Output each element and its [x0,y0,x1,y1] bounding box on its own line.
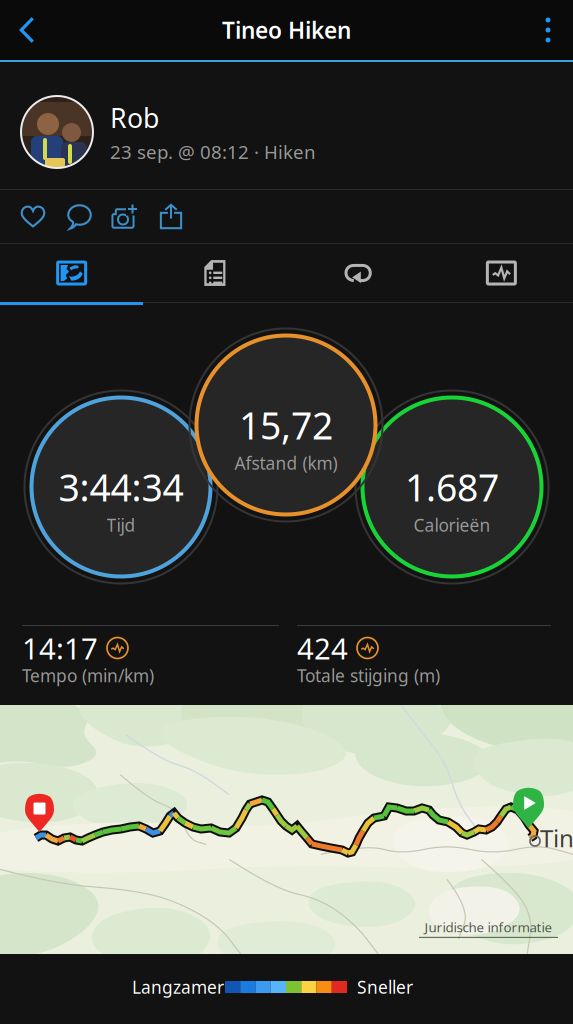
staticText: Tempo (min/km) [22,664,154,687]
staticText: 1.687 [405,462,499,512]
button[interactable]: Share [148,190,194,243]
staticText: 424 [297,628,348,667]
button[interactable]: Details [143,244,286,302]
staticText: 14:17 [22,628,98,667]
button[interactable]: More options [523,0,573,60]
staticText: 23 sep. @ 08:12 · Hiken [110,139,316,164]
staticText: Sneller [357,975,413,998]
button[interactable]: Add photo [102,190,148,243]
button[interactable]: Comment [56,190,102,243]
staticText: Afstand (km) [234,451,337,474]
button[interactable]: Laps [286,244,430,302]
button[interactable]: Back [0,0,54,60]
button[interactable]: Like [10,190,56,243]
staticText: 3:44:34 [58,462,183,512]
staticText: Calorieën [413,513,490,536]
staticText: Tineo Hiken [222,15,351,45]
staticText: Juridische informatie [424,918,552,936]
staticText: Langzamer [132,975,224,998]
staticText: Tineo [540,822,573,854]
staticText: Tijd [106,513,135,536]
staticText: Rob [110,100,159,135]
button[interactable]: Map [0,244,143,302]
staticText: Totale stijging (m) [297,664,440,687]
staticText: 15,72 [239,400,333,450]
button[interactable]: Charts [430,244,573,302]
